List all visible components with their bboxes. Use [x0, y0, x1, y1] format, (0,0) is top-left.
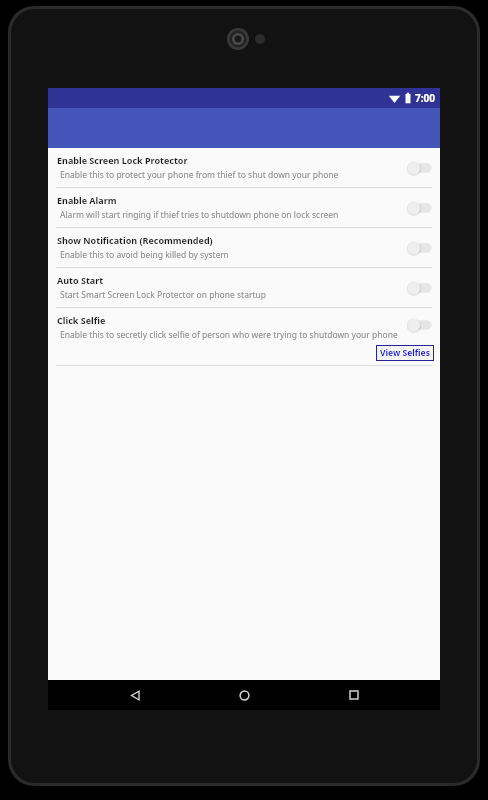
staticText: Enable Alarm — [57, 194, 117, 206]
staticText: Click Selfie — [57, 314, 106, 326]
staticText: View Selfies — [380, 347, 430, 359]
button[interactable]: Toggle setting — [404, 279, 434, 297]
button[interactable]: Enable Alarm — [48, 188, 440, 227]
button[interactable]: Show Notification (Recommended) — [48, 228, 440, 267]
button[interactable]: Recent apps — [331, 680, 377, 710]
button[interactable]: Toggle setting — [404, 239, 434, 257]
button[interactable]: Click Selfie — [48, 308, 440, 365]
button[interactable]: Toggle setting — [404, 199, 434, 217]
staticText: 7:00 — [415, 91, 435, 105]
staticText: Enable this to avoid being killed by sys… — [60, 249, 229, 261]
button[interactable]: Toggle setting — [404, 159, 434, 177]
staticText: Alarm will start ringing if thief tries … — [60, 209, 339, 221]
button[interactable]: Toggle setting — [404, 316, 434, 334]
button[interactable]: Home — [221, 680, 267, 710]
button[interactable]: Back — [112, 680, 158, 710]
staticText: Enable Screen Lock Protector — [57, 154, 188, 166]
button[interactable]: Auto Start — [48, 268, 440, 307]
staticText: Auto Start — [57, 274, 104, 286]
button[interactable]: View Selfies — [376, 345, 434, 361]
staticText: Show Notification (Recommended) — [57, 234, 213, 246]
staticText: Enable this to protect your phone from t… — [60, 169, 339, 181]
staticText: Enable this to secretly click selfie of … — [60, 329, 398, 341]
button[interactable]: Enable Screen Lock Protector — [48, 148, 440, 187]
staticText: Start Smart Screen Lock Protector on pho… — [60, 289, 266, 301]
